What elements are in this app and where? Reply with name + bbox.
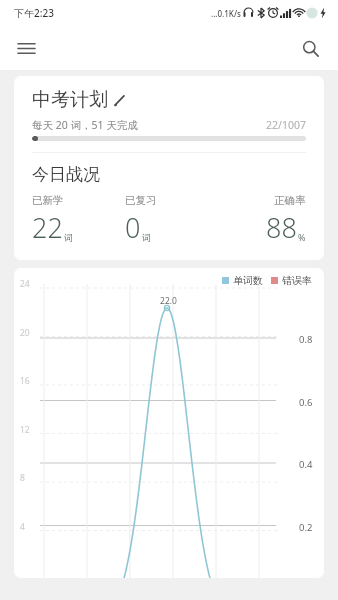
- staticText: 错误率: [282, 274, 312, 287]
- staticText: 已复习: [125, 194, 157, 207]
- staticText: 中考计划: [32, 88, 108, 112]
- staticText: 88: [266, 209, 297, 246]
- staticText: 0.8: [299, 333, 313, 346]
- staticText: 0.2: [299, 521, 313, 534]
- button[interactable]: 已新学: [32, 194, 125, 246]
- staticText: 22.0: [160, 295, 177, 307]
- staticText: 下午2:23: [14, 6, 54, 20]
- staticText: 22/1007: [266, 118, 306, 132]
- staticText: 0: [125, 209, 141, 246]
- button[interactable]: 已复习: [125, 194, 218, 246]
- staticText: 每天 20 词，51 天完成: [32, 118, 138, 132]
- staticText: 0.4: [299, 458, 313, 471]
- staticText: 20: [20, 327, 30, 339]
- staticText: 词: [142, 232, 151, 243]
- button[interactable]: 正确率: [218, 194, 306, 246]
- staticText: %: [298, 231, 306, 243]
- button[interactable]: Edit plan: [110, 91, 128, 109]
- staticText: 词: [64, 232, 73, 243]
- staticText: 4: [20, 521, 25, 533]
- button[interactable]: Menu: [8, 30, 44, 66]
- button[interactable]: 单词数: [14, 268, 324, 578]
- staticText: 12: [20, 424, 30, 436]
- staticText: 单词数: [233, 274, 263, 287]
- staticText: 24: [20, 278, 30, 290]
- staticText: 0.6: [299, 396, 313, 409]
- staticText: 正确率: [274, 194, 306, 207]
- button[interactable]: Search: [292, 30, 328, 66]
- button[interactable]: 中考计划: [14, 76, 324, 260]
- staticText: 8: [20, 472, 25, 484]
- staticText: 16: [20, 375, 30, 387]
- staticText: 22: [32, 209, 63, 246]
- staticText: 已新学: [32, 194, 64, 207]
- staticText: 今日战况: [32, 164, 100, 185]
- staticText: ...0.1K/s: [211, 8, 241, 19]
